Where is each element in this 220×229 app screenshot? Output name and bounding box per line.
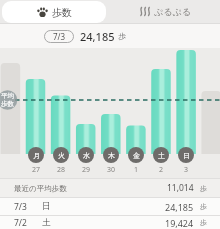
button[interactable]: 7/2 bbox=[14, 216, 207, 229]
button[interactable]: 木 bbox=[103, 147, 119, 163]
staticText: 日 bbox=[42, 201, 51, 212]
staticText: 金 bbox=[133, 151, 140, 160]
staticText: 水 bbox=[83, 151, 90, 160]
staticText: 1 bbox=[134, 165, 139, 175]
staticText: 27 bbox=[32, 165, 41, 175]
staticText: 7/2 bbox=[14, 217, 27, 229]
staticText: 歩 bbox=[200, 184, 207, 193]
button[interactable]: 最近の平均歩数 bbox=[14, 179, 207, 197]
staticText: 24,185 bbox=[80, 29, 115, 44]
staticText: 歩 bbox=[200, 202, 207, 211]
staticText: ぷるぷる bbox=[154, 6, 191, 17]
button[interactable]: ぷるぷる bbox=[110, 0, 220, 23]
staticText: 30 bbox=[107, 165, 116, 175]
staticText: 19,424 bbox=[165, 217, 194, 229]
staticText: 最近の平均歩数 bbox=[14, 184, 67, 193]
button[interactable]: 金 bbox=[128, 147, 144, 163]
staticText: 木 bbox=[108, 151, 115, 160]
staticText: 29 bbox=[82, 165, 91, 175]
staticText: 日 bbox=[183, 151, 190, 160]
button[interactable]: 土 bbox=[153, 147, 169, 163]
staticText: 歩 bbox=[200, 218, 207, 227]
button[interactable]: 7/3 bbox=[44, 30, 74, 43]
staticText: 7/3 bbox=[14, 201, 27, 213]
staticText: 土 bbox=[158, 151, 165, 160]
button[interactable]: 歩数 bbox=[2, 1, 106, 23]
staticText: 火 bbox=[58, 151, 65, 160]
button[interactable]: 水 bbox=[78, 147, 94, 163]
staticText: 28 bbox=[57, 165, 66, 175]
button[interactable]: 日 bbox=[178, 147, 194, 163]
staticText: 土 bbox=[42, 217, 51, 228]
staticText: 3 bbox=[184, 165, 189, 175]
staticText: 歩数 bbox=[52, 6, 72, 19]
staticText: 7/3 bbox=[53, 31, 66, 42]
staticText: 歩 bbox=[118, 31, 126, 41]
staticText: 平均 bbox=[1, 92, 14, 100]
staticText: 歩数 bbox=[1, 100, 14, 108]
button[interactable]: 月 bbox=[28, 147, 44, 163]
staticText: 月 bbox=[33, 151, 40, 160]
button[interactable]: 7/3 bbox=[14, 198, 207, 215]
staticText: 11,014 bbox=[167, 182, 194, 194]
staticText: 24,185 bbox=[165, 201, 194, 213]
staticText: 2 bbox=[159, 165, 164, 175]
button[interactable]: 火 bbox=[53, 147, 69, 163]
